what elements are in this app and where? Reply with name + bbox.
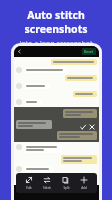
button[interactable]: Back bbox=[17, 49, 22, 54]
button[interactable]: Confirm bbox=[78, 122, 87, 131]
button[interactable]: Edit bbox=[23, 174, 35, 192]
button[interactable]: Split bbox=[60, 174, 72, 192]
staticText: into a long screenshot bbox=[19, 39, 93, 49]
button[interactable]: Reset bbox=[82, 48, 96, 55]
button[interactable]: Add bbox=[78, 174, 90, 192]
staticText: Edit bbox=[26, 186, 32, 190]
button[interactable]: Stitch bbox=[41, 174, 53, 192]
staticText: Stitch bbox=[43, 186, 51, 190]
staticText: Auto stitch screenshots bbox=[4, 8, 108, 36]
staticText: Add bbox=[81, 186, 87, 190]
staticText: Split bbox=[63, 186, 70, 190]
button[interactable]: Cancel bbox=[87, 122, 96, 131]
staticText: Reset bbox=[84, 49, 94, 54]
